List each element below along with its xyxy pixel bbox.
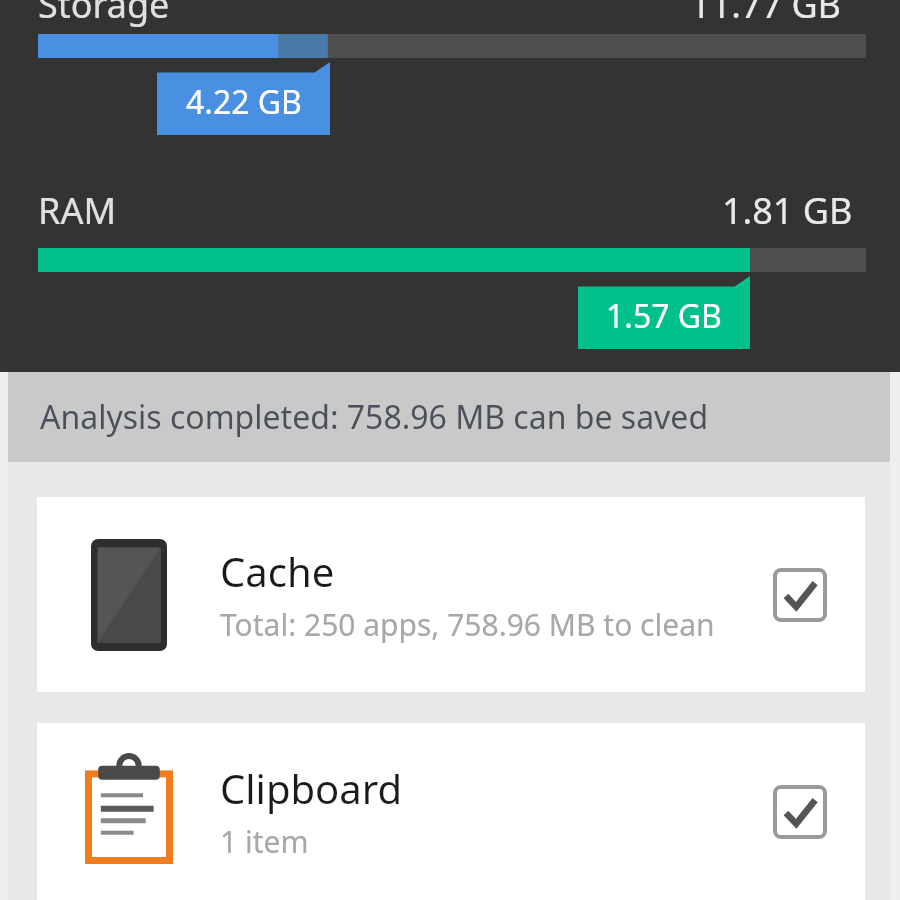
staticText: 1.57 GB: [606, 294, 722, 338]
button[interactable]: Select Clipboard: [735, 785, 865, 839]
button[interactable]: Cache: [37, 497, 865, 692]
staticText: 11.77 GB: [690, 0, 841, 29]
staticText: 1 item: [220, 821, 309, 862]
staticText: Analysis completed: 758.96 MB can be sav…: [40, 395, 709, 439]
staticText: Storage: [38, 0, 170, 29]
button[interactable]: Select Cache: [735, 568, 865, 622]
staticText: RAM: [38, 186, 117, 235]
button[interactable]: Clipboard: [37, 723, 865, 900]
button[interactable]: Analysis completed: 758.96 MB can be sav…: [8, 372, 890, 462]
staticText: 1.81 GB: [722, 186, 853, 235]
staticText: 4.22 GB: [186, 80, 302, 124]
staticText: Total: 250 apps, 758.96 MB to clean: [220, 604, 715, 645]
staticText: Clipboard: [220, 761, 403, 815]
staticText: Cache: [220, 544, 335, 598]
